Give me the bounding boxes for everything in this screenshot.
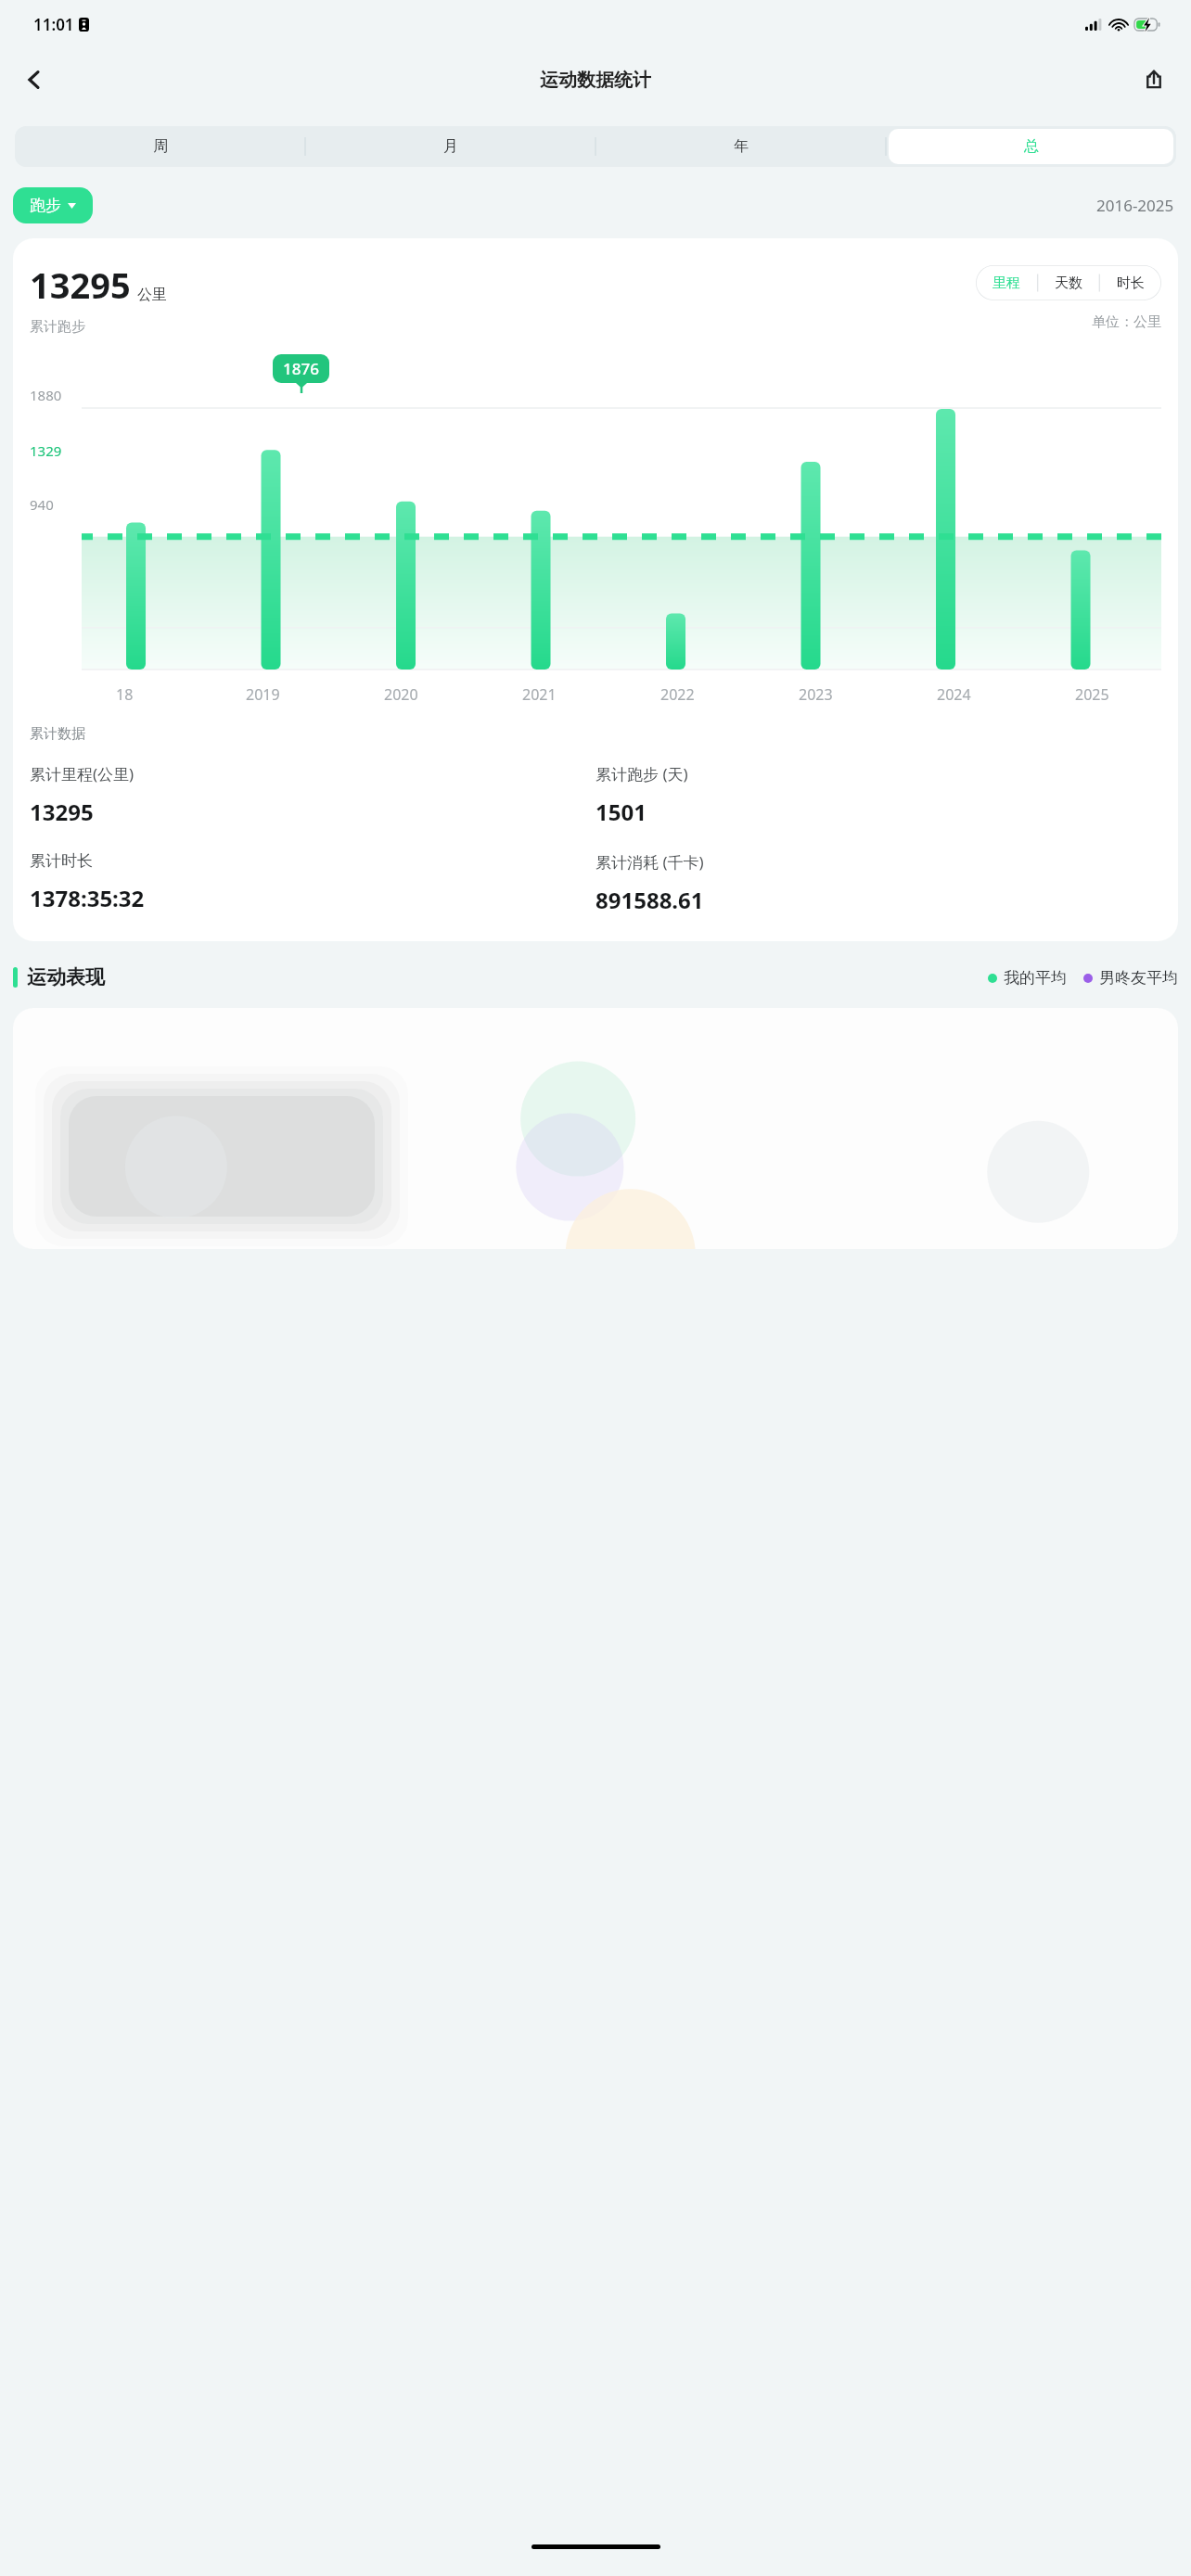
staticText: 2022 xyxy=(660,684,695,705)
staticText: 月 xyxy=(443,137,458,156)
staticText: 13295 xyxy=(30,797,94,827)
staticText: 891588.61 xyxy=(595,885,704,915)
button[interactable]: Share xyxy=(1130,56,1178,104)
button[interactable]: 里程 xyxy=(976,265,1037,300)
staticText: 2023 xyxy=(799,684,833,705)
staticText: 1880 xyxy=(30,386,62,404)
staticText: 单位：公里 xyxy=(1092,313,1161,331)
staticText: 2016-2025 xyxy=(1096,195,1174,216)
staticText: 2021 xyxy=(522,684,557,705)
staticText: 18 xyxy=(116,684,134,705)
staticText: 11:01 xyxy=(33,14,74,35)
button[interactable]: 时长 xyxy=(1099,265,1161,300)
staticText: 时长 xyxy=(1117,274,1145,292)
staticText: 公里 xyxy=(137,286,167,304)
staticText: 累计里程(公里) xyxy=(30,763,134,784)
staticText: 1329 xyxy=(30,441,62,460)
staticText: 2020 xyxy=(384,684,418,705)
button[interactable]: 月 xyxy=(308,129,593,164)
staticText: 2025 xyxy=(1075,684,1109,705)
staticText: 940 xyxy=(30,495,54,514)
button[interactable]: Back xyxy=(9,55,59,105)
staticText: 1876 xyxy=(283,358,319,379)
staticText: 里程 xyxy=(992,274,1020,292)
staticText: 1378:35:32 xyxy=(30,883,145,913)
staticText: 累计数据 xyxy=(30,725,85,743)
staticText: 2024 xyxy=(937,684,971,705)
button[interactable]: 周 xyxy=(18,129,302,164)
staticText: 累计跑步 xyxy=(30,318,85,336)
staticText: 运动表现 xyxy=(27,965,105,989)
staticText: 2019 xyxy=(246,684,280,705)
staticText: 运动数据统计 xyxy=(540,69,651,92)
button[interactable]: 总 xyxy=(889,129,1173,164)
staticText: 我的平均 xyxy=(1004,968,1067,988)
staticText: 天数 xyxy=(1055,274,1082,292)
staticText: 累计时长 xyxy=(30,851,93,871)
staticText: 周 xyxy=(153,137,168,156)
staticText: 年 xyxy=(734,137,749,156)
button[interactable]: 年 xyxy=(598,129,883,164)
button[interactable]: 天数 xyxy=(1037,265,1099,300)
staticText: 13295 xyxy=(30,261,131,309)
staticText: 1501 xyxy=(595,797,647,827)
staticText: 男咚友平均 xyxy=(1099,968,1178,988)
staticText: 累计消耗 (千卡) xyxy=(595,851,704,873)
staticText: 总 xyxy=(1024,137,1039,156)
staticText: 跑步 xyxy=(30,196,61,215)
staticText: 累计跑步 (天) xyxy=(595,763,688,784)
button[interactable]: 跑步 xyxy=(13,187,93,223)
